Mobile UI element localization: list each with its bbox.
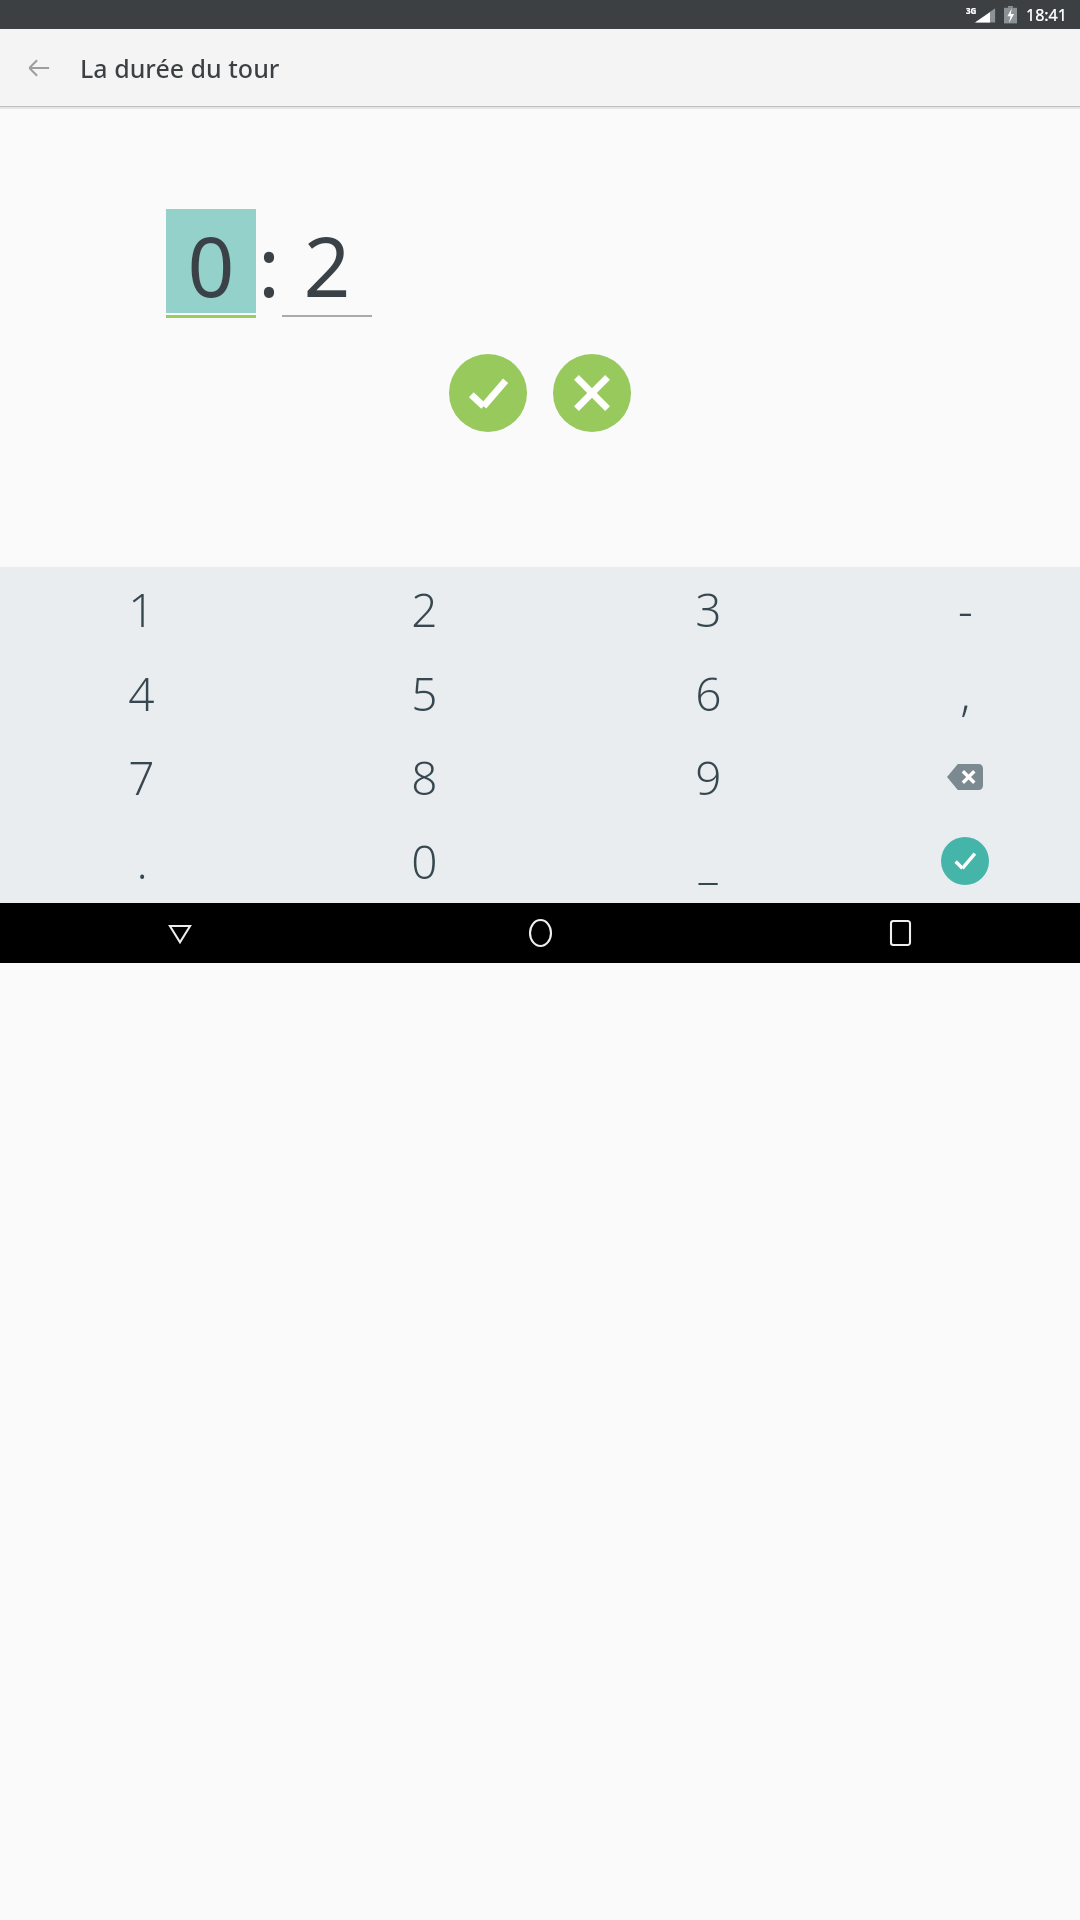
button[interactable]: Confirm	[449, 354, 527, 432]
staticText: 1	[128, 578, 155, 641]
button[interactable]: 9	[566, 735, 850, 819]
button[interactable]: Home	[360, 903, 720, 963]
staticText: :	[258, 209, 280, 313]
button[interactable]: Recent apps	[720, 903, 1080, 963]
button[interactable]: 3	[566, 567, 850, 651]
button[interactable]: 0	[283, 819, 566, 903]
staticText: 7	[128, 746, 155, 809]
staticText: 3	[695, 578, 722, 641]
staticText: 18:41	[1026, 4, 1067, 26]
button[interactable]: -	[850, 567, 1080, 651]
staticText: La durée du tour	[80, 51, 280, 85]
staticText: ,	[960, 662, 971, 725]
button[interactable]: Back	[15, 44, 63, 92]
button[interactable]: .	[0, 819, 283, 903]
button[interactable]: 5	[283, 651, 566, 735]
button[interactable]: 2	[283, 567, 566, 651]
staticText: _	[698, 830, 718, 893]
button[interactable]: 20	[282, 209, 372, 317]
staticText: 5	[411, 662, 438, 725]
button[interactable]: Backspace	[850, 735, 1080, 819]
button[interactable]: 7	[0, 735, 283, 819]
staticText: 20	[282, 209, 372, 313]
button[interactable]: 1	[0, 567, 283, 651]
staticText: 00	[166, 209, 256, 313]
staticText: -	[958, 578, 973, 641]
button[interactable]: _	[566, 819, 850, 903]
staticText: 6	[695, 662, 722, 725]
button[interactable]: Back	[0, 903, 360, 963]
staticText: 0	[411, 830, 438, 893]
button[interactable]: 00	[166, 209, 256, 318]
button[interactable]: ,	[850, 651, 1080, 735]
staticText: .	[136, 830, 148, 893]
button[interactable]: Cancel	[553, 354, 631, 432]
staticText: 9	[695, 746, 722, 809]
staticText: 8	[411, 746, 438, 809]
staticText: 2	[411, 578, 438, 641]
button[interactable]: 4	[0, 651, 283, 735]
button[interactable]: 6	[566, 651, 850, 735]
staticText: 4	[128, 662, 155, 725]
button[interactable]: Done	[850, 819, 1080, 903]
staticText: 3G	[966, 5, 977, 16]
button[interactable]: 8	[283, 735, 566, 819]
